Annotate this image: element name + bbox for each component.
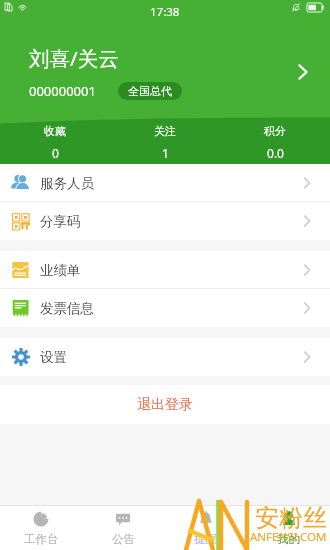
staticText: 服务人员 <box>40 175 94 192</box>
staticText: 积分 <box>264 124 286 138</box>
staticText: 1 <box>162 145 169 161</box>
staticText: 分享码 <box>40 213 81 230</box>
button[interactable]: 关注 <box>110 120 220 164</box>
button[interactable]: 收藏 <box>0 120 110 164</box>
button[interactable]: 我的 <box>247 506 330 550</box>
staticText: 刘喜/关云 <box>29 44 119 72</box>
staticText: 发票信息 <box>40 300 94 317</box>
other: Profile details <box>292 61 314 83</box>
button[interactable]: 公告 <box>82 506 164 550</box>
staticText: 公告 <box>112 532 135 546</box>
button[interactable]: 设置 <box>0 338 330 376</box>
button[interactable]: 工作台 <box>0 506 82 550</box>
button[interactable]: 提醒 <box>164 506 247 550</box>
staticText: 关注 <box>154 124 176 138</box>
button[interactable]: 分享码 <box>0 202 330 240</box>
button[interactable]: 刘喜/关云 <box>0 32 330 112</box>
button[interactable]: 发票信息 <box>0 289 330 327</box>
staticText: 17:38 <box>150 4 180 20</box>
staticText: 全国总代 <box>128 84 172 98</box>
staticText: 0 <box>52 145 59 161</box>
staticText: 退出登录 <box>137 396 193 414</box>
staticText: 设置 <box>40 349 67 366</box>
staticText: 0.0 <box>267 145 284 161</box>
staticText: 000000001 <box>29 82 96 100</box>
staticText: 收藏 <box>44 124 66 138</box>
button[interactable]: 服务人员 <box>0 164 330 202</box>
button[interactable]: 积分 <box>220 120 330 164</box>
button[interactable]: 业绩单 <box>0 251 330 289</box>
staticText: 业绩单 <box>40 262 81 279</box>
staticText: 提醒 <box>194 532 217 546</box>
staticText: 我的 <box>277 532 300 546</box>
staticText: 工作台 <box>24 532 59 546</box>
staticText: 安粉丝 <box>255 503 327 533</box>
button[interactable]: 退出登录 <box>0 385 330 424</box>
staticText: ANFENSI.COM <box>250 529 327 545</box>
